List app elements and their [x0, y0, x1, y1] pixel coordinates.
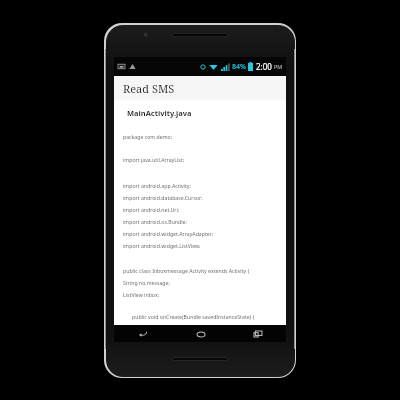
button[interactable]: Home — [172, 325, 229, 342]
staticText: PM — [274, 63, 283, 70]
staticText: 2:00 — [256, 61, 272, 72]
staticText: import android.database.Cursor; — [123, 194, 283, 201]
staticText: String no,message; — [123, 279, 283, 286]
staticText: 84% — [232, 62, 246, 72]
staticText: MainActivity.java — [127, 108, 192, 118]
staticText: import java.util.ArrayList; — [123, 156, 283, 163]
button[interactable]: Back — [114, 325, 172, 342]
button[interactable]: Read SMS — [114, 76, 286, 100]
staticText: package com.demo; — [123, 133, 283, 140]
staticText: import android.app.Activity; — [123, 182, 283, 189]
button[interactable]: Recent apps — [229, 325, 286, 342]
staticText: public void onCreate(Bundle savedInstanc… — [132, 313, 283, 320]
staticText: public class Inboxmessage Activity exten… — [123, 267, 283, 274]
staticText: ListView inbox; — [123, 291, 283, 298]
staticText: Read SMS — [123, 81, 175, 96]
staticText: import android.widget.ArrayAdapter; — [123, 230, 283, 237]
staticText: import android.widget.ListView; — [123, 242, 283, 249]
staticText: import android.net.Uri; — [123, 206, 283, 213]
staticText: import android.os.Bundle; — [123, 218, 283, 225]
